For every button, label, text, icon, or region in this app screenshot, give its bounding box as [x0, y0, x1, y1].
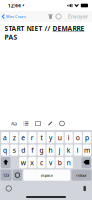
staticText: g [39, 146, 43, 155]
button[interactable]: h [46, 144, 54, 156]
staticText: c [40, 158, 43, 167]
staticText: f [31, 146, 33, 155]
button[interactable]: k [65, 144, 73, 156]
staticText: w [21, 158, 26, 167]
button[interactable] [1, 157, 10, 168]
button[interactable]: p [83, 132, 91, 143]
button[interactable]: retour [71, 169, 91, 181]
staticText: u [58, 133, 62, 142]
button[interactable]: d [19, 144, 27, 156]
staticText: m [84, 146, 90, 155]
staticText: q [3, 146, 7, 155]
button[interactable]: o [74, 132, 82, 143]
button[interactable] [81, 157, 91, 168]
staticText: b [58, 158, 62, 167]
button[interactable]: j [56, 144, 64, 156]
staticText: START NIET // DEMARRE PAS [4, 24, 84, 42]
staticText: l [77, 146, 79, 155]
button[interactable]: w [19, 157, 27, 168]
button[interactable]: y [46, 132, 54, 143]
button[interactable] [44, 117, 56, 130]
button[interactable]: Aa [8, 117, 20, 130]
staticText: s [13, 146, 16, 155]
staticText: k [67, 146, 71, 155]
button[interactable]: l [74, 144, 82, 156]
button[interactable]: espace [23, 169, 70, 181]
button[interactable]: q [1, 144, 9, 156]
button[interactable]: Envoyer [68, 10, 88, 23]
button[interactable] [56, 117, 68, 130]
button[interactable]: a [1, 132, 9, 143]
button[interactable]: g [37, 144, 45, 156]
button[interactable]: 123 [1, 169, 12, 181]
staticText: p [85, 133, 89, 142]
button[interactable]: t [37, 132, 45, 143]
button[interactable]: m [83, 144, 91, 156]
button[interactable]: v [46, 157, 54, 168]
button[interactable] [83, 186, 86, 191]
staticText: x [30, 158, 34, 167]
staticText: i [68, 133, 70, 142]
button[interactable] [20, 117, 32, 130]
button[interactable]: n [65, 157, 73, 168]
staticText: y [49, 133, 52, 142]
staticText: z [13, 133, 16, 142]
staticText: 12:44 [8, 2, 21, 9]
button[interactable]: i [65, 132, 73, 143]
staticText: Envoyer [68, 13, 88, 20]
staticText: j [59, 146, 61, 155]
button[interactable]: f [28, 144, 36, 156]
button[interactable] [46, 11, 55, 22]
staticText: n [67, 158, 71, 167]
button[interactable]: s [10, 144, 18, 156]
staticText: d [21, 146, 25, 155]
button[interactable]: r [28, 132, 36, 143]
button[interactable]: b [56, 157, 64, 168]
staticText: v [49, 158, 52, 167]
button[interactable]: c [37, 157, 45, 168]
staticText: r [31, 133, 34, 142]
button[interactable]: x [28, 157, 36, 168]
staticText: h [48, 146, 52, 155]
button[interactable]: z [10, 132, 18, 143]
button[interactable]: u [56, 132, 64, 143]
button[interactable] [6, 186, 11, 191]
staticText: 123 [3, 172, 9, 178]
staticText: a [3, 133, 7, 142]
staticText: t [40, 133, 42, 142]
button[interactable] [54, 11, 63, 22]
staticText: Mes Cours [6, 14, 26, 19]
button[interactable]: Mes Cours [0, 11, 26, 22]
staticText: espace [41, 172, 53, 178]
button[interactable] [13, 169, 22, 181]
staticText: retour [76, 172, 87, 178]
button[interactable]: e [19, 132, 27, 143]
button[interactable] [32, 117, 44, 130]
staticText: Aa [11, 120, 17, 127]
staticText: o [76, 133, 80, 142]
staticText: e [21, 133, 25, 142]
